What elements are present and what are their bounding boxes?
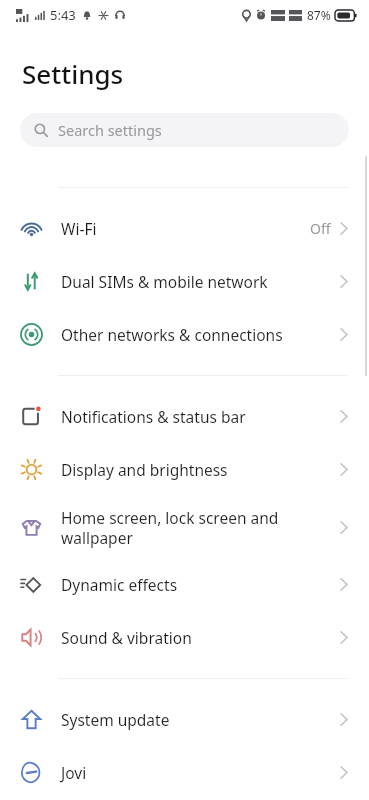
button[interactable]: Search settings: [20, 113, 349, 147]
staticText: Other networks & connections: [61, 324, 283, 345]
staticText: Search settings: [58, 120, 162, 140]
staticText: Jovi: [61, 762, 87, 783]
staticText: Notifications & status bar: [61, 406, 246, 427]
button[interactable]: Home screen, lock screen and wallpaper: [0, 496, 369, 558]
button[interactable]: Wi-Fi: [0, 202, 369, 255]
staticText: Wi-Fi: [61, 218, 97, 239]
staticText: Home screen, lock screen and wallpaper: [61, 507, 279, 548]
button[interactable]: Sound & vibration: [0, 611, 369, 664]
button[interactable]: Other networks & connections: [0, 308, 369, 361]
staticText: System update: [61, 709, 170, 730]
button[interactable]: Jovi: [0, 746, 369, 799]
staticText: 87%: [307, 7, 331, 23]
button[interactable]: Notifications & status bar: [0, 390, 369, 443]
staticText: Settings: [22, 56, 124, 91]
button[interactable]: Display and brightness: [0, 443, 369, 496]
staticText: Dynamic effects: [61, 574, 178, 595]
staticText: Dual SIMs & mobile network: [61, 271, 268, 292]
staticText: 5:43: [50, 6, 76, 24]
staticText: Display and brightness: [61, 459, 228, 480]
button[interactable]: System update: [0, 693, 369, 746]
button[interactable]: Dual SIMs & mobile network: [0, 255, 369, 308]
button[interactable]: Dynamic effects: [0, 558, 369, 611]
staticText: Sound & vibration: [61, 627, 192, 648]
staticText: Off: [310, 219, 331, 238]
